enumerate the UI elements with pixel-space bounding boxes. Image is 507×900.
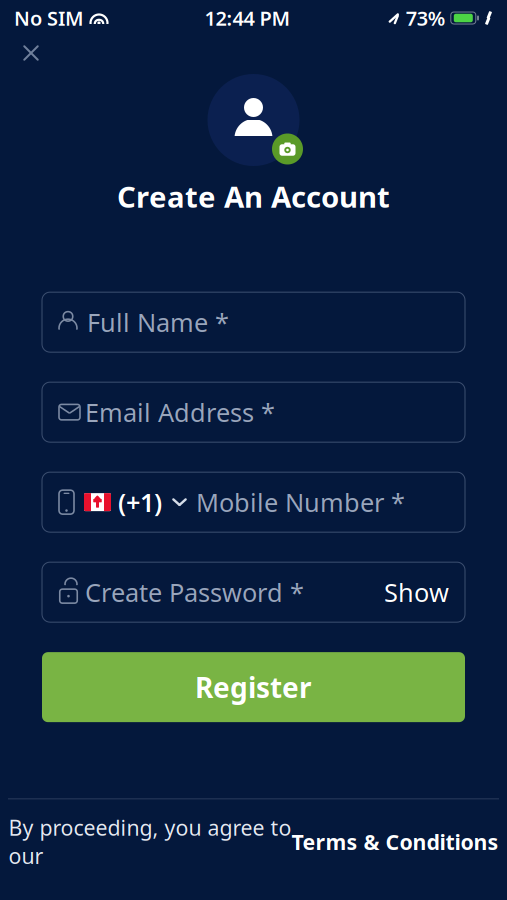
staticText: 12:44 PM — [204, 5, 290, 31]
staticText: No SIM — [14, 5, 84, 31]
staticText: Email Address * — [85, 395, 275, 429]
button[interactable]: Change profile photo — [187, 74, 319, 166]
staticText: (+1) — [118, 485, 162, 519]
staticText: Show — [384, 575, 449, 609]
staticText: Create Password * — [85, 575, 304, 609]
button[interactable]: Close — [10, 32, 52, 74]
staticText: Register — [195, 669, 312, 706]
button[interactable]: Register — [42, 652, 465, 722]
staticText: Terms & Conditions — [291, 827, 498, 856]
staticText: Mobile Number * — [196, 485, 405, 519]
button[interactable]: Email Address * — [42, 382, 465, 442]
staticText: By proceeding, you agree to our — [8, 813, 291, 870]
button[interactable]: Full Name * — [42, 292, 465, 352]
button[interactable]: By proceeding, you agree to our — [0, 799, 507, 884]
staticText: Create An Account — [117, 177, 390, 216]
staticText: Full Name * — [87, 305, 229, 339]
button[interactable]: Create Password * — [42, 562, 465, 622]
button[interactable]: (+1) — [42, 472, 465, 532]
staticText: 73% — [406, 5, 446, 31]
